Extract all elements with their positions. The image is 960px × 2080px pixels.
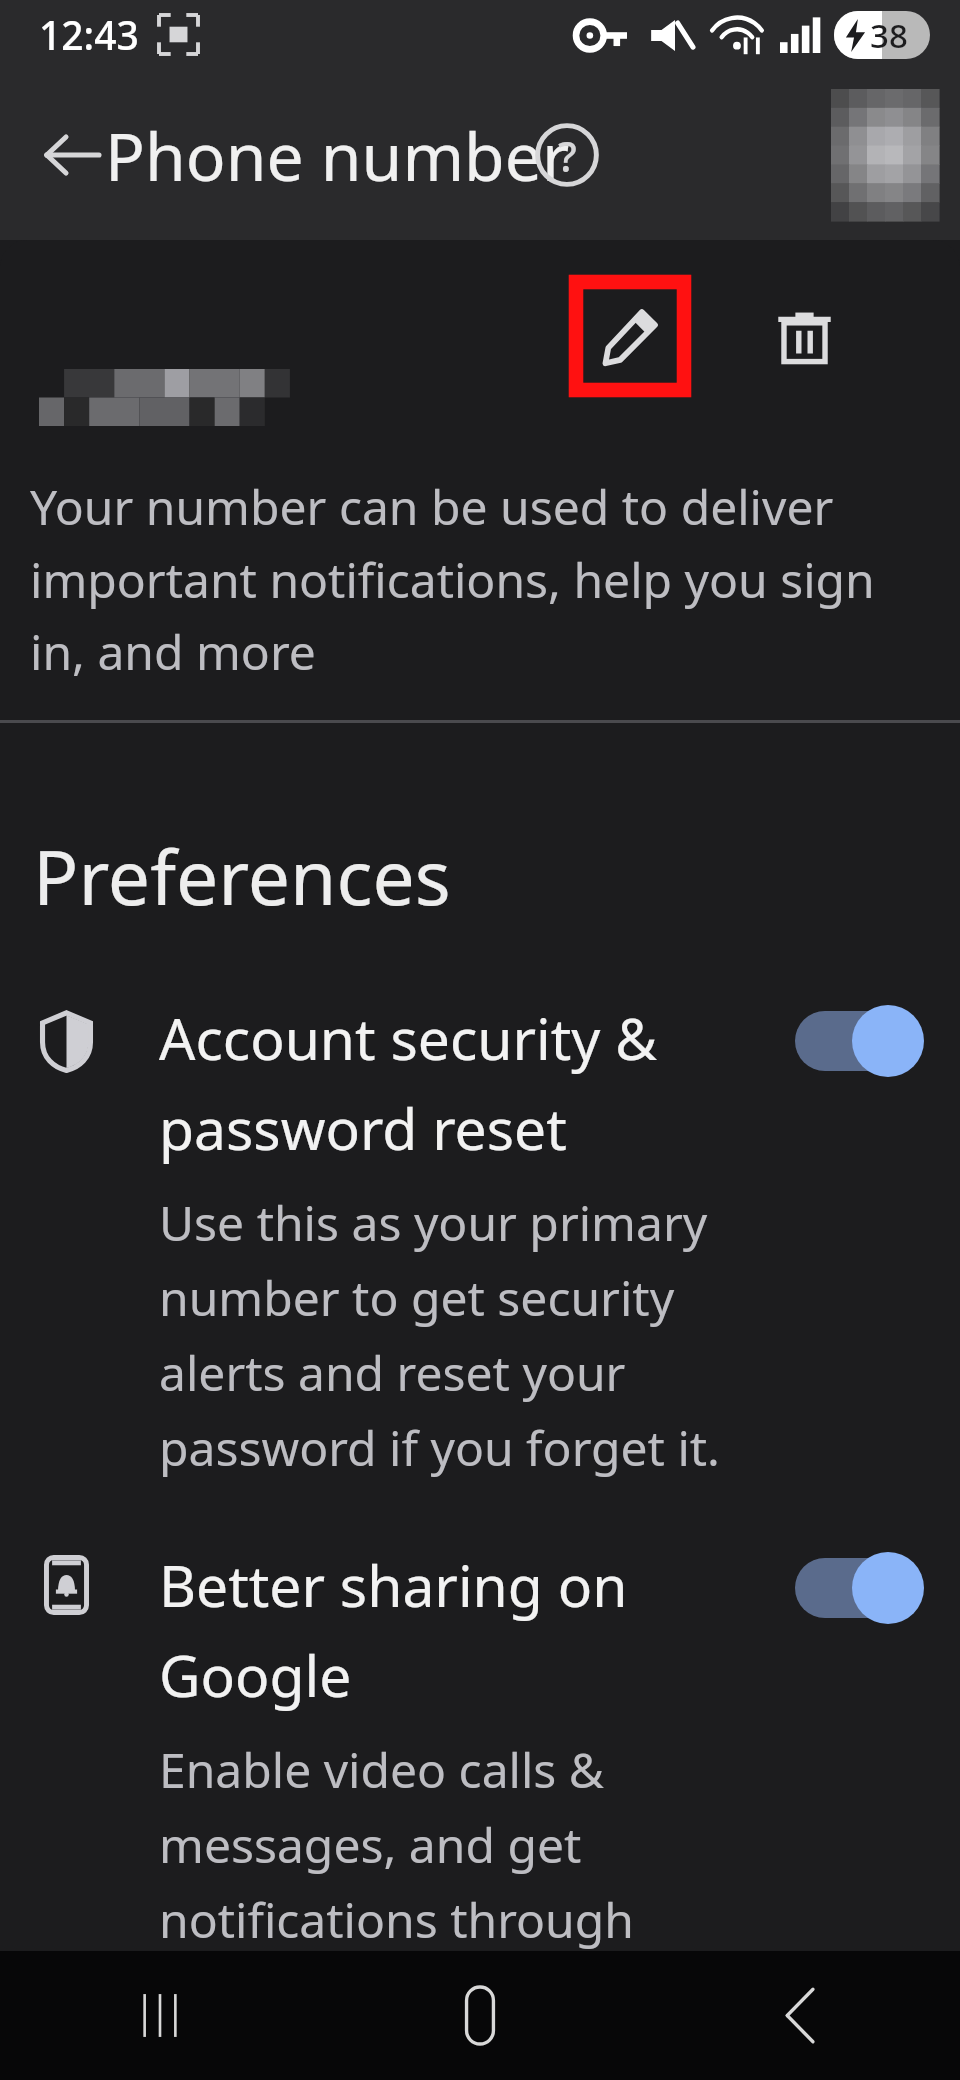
- button[interactable]: Toggle on: [792, 1552, 924, 1624]
- button[interactable]: Back: [18, 101, 126, 209]
- staticText: Better sharing on Google: [159, 1546, 768, 1713]
- staticText: Your number can be used to deliver impor…: [30, 474, 876, 684]
- staticText: 38: [870, 13, 908, 58]
- button[interactable]: Home: [320, 1951, 640, 2080]
- button[interactable]: Delete: [750, 282, 858, 390]
- button[interactable]: Edit: [576, 282, 684, 390]
- staticText: Preferences: [33, 825, 451, 927]
- staticText: Enable video calls & messages, and get n…: [159, 1737, 768, 2080]
- button[interactable]: Recent apps: [0, 1951, 320, 2080]
- staticText: Use this as your primary number to get s…: [159, 1190, 768, 1480]
- button[interactable]: Help: [510, 98, 624, 212]
- button[interactable]: Account security & password reset: [0, 999, 960, 1480]
- staticText: Account security & password reset: [159, 999, 768, 1166]
- button[interactable]: Account: [831, 89, 939, 221]
- staticText: Phone number: [105, 110, 570, 200]
- staticText: ?: [558, 127, 577, 184]
- button[interactable]: Better sharing on Google: [0, 1546, 960, 2080]
- button[interactable]: Back: [640, 1951, 960, 2080]
- button[interactable]: Toggle on: [792, 1005, 924, 1077]
- staticText: 12:43: [39, 8, 139, 61]
